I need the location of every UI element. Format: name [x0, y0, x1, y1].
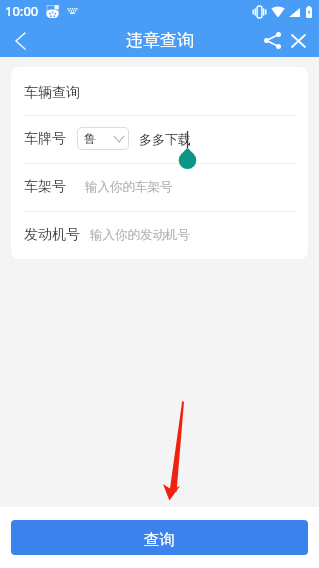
- staticText: 车架号: [24, 178, 66, 196]
- staticText: 车辆查询: [24, 84, 80, 102]
- staticText: 车牌号: [24, 130, 66, 148]
- button[interactable]: 车架号: [24, 164, 308, 211]
- staticText: 输入你的车架号: [85, 179, 173, 195]
- staticText: 10:00: [5, 2, 39, 20]
- button[interactable]: 发动机号: [24, 212, 308, 259]
- staticText: 鲁: [84, 131, 96, 146]
- button[interactable]: 查询: [11, 520, 308, 555]
- button[interactable]: Close: [285, 24, 311, 57]
- staticText: 查询: [144, 530, 175, 550]
- button[interactable]: 鲁: [77, 127, 129, 150]
- staticText: 多多下载: [139, 131, 191, 147]
- button[interactable]: Share: [260, 24, 285, 57]
- staticText: 违章查询: [126, 30, 194, 51]
- button[interactable]: Back: [0, 24, 40, 57]
- staticText: 输入你的发动机号: [90, 227, 190, 243]
- staticText: 发动机号: [24, 226, 80, 244]
